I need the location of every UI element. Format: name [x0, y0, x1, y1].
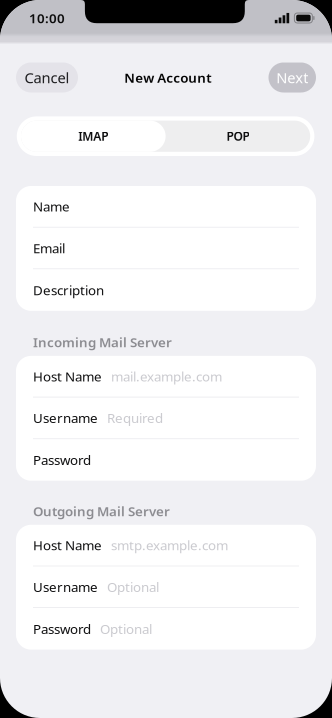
staticText: Incoming Mail Server [33, 333, 172, 351]
staticText: Description [33, 281, 104, 299]
staticText: Next [276, 68, 308, 87]
button[interactable]: Host Name [16, 356, 316, 397]
button[interactable]: POP [166, 121, 310, 152]
staticText: New Account [124, 69, 211, 86]
staticText: Password [33, 451, 91, 469]
staticText: Required [107, 409, 163, 427]
staticText: 10:00 [29, 9, 65, 27]
staticText: Outgoing Mail Server [33, 502, 170, 520]
staticText: Username [33, 409, 98, 427]
button[interactable]: IMAP [21, 121, 166, 152]
staticText: Password [33, 620, 91, 638]
button[interactable]: Next [268, 62, 316, 92]
button[interactable]: Username [16, 566, 316, 607]
staticText: Email [33, 239, 65, 257]
staticText: mail.example.com [111, 367, 222, 385]
button[interactable]: Cancel [16, 62, 78, 92]
staticText: Optional [107, 578, 159, 596]
button[interactable]: Password [16, 608, 316, 650]
staticText: Username [33, 578, 98, 596]
staticText: IMAP [78, 128, 108, 144]
button[interactable]: Description [16, 269, 316, 311]
staticText: Optional [100, 620, 152, 638]
staticText: Cancel [24, 68, 69, 87]
button[interactable]: Email [16, 228, 316, 268]
staticText: Host Name [33, 536, 102, 554]
staticText: POP [226, 128, 249, 144]
staticText: Name [33, 197, 70, 215]
staticText: smtp.example.com [111, 536, 228, 554]
staticText: Host Name [33, 367, 102, 385]
button[interactable]: Host Name [16, 525, 316, 566]
button[interactable]: Username [16, 397, 316, 438]
button[interactable]: Password [16, 439, 316, 481]
button[interactable]: Name [16, 186, 316, 227]
